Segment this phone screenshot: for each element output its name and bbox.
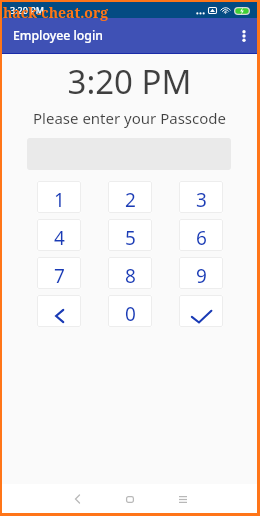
button[interactable]: 9	[179, 257, 223, 289]
staticText: 4	[54, 225, 65, 251]
button[interactable]: 5	[108, 219, 152, 251]
staticText: 1	[54, 187, 65, 213]
button[interactable]: Confirm	[179, 295, 223, 327]
staticText: 7	[54, 263, 65, 289]
button[interactable]: 6	[179, 219, 223, 251]
button[interactable]: 1	[37, 181, 81, 213]
button[interactable]: 7	[37, 257, 81, 289]
button[interactable]: 3	[179, 181, 223, 213]
button[interactable]: 2	[108, 181, 152, 213]
staticText: Employee login	[13, 27, 104, 44]
staticText: 2	[125, 187, 136, 213]
button[interactable]: 0	[108, 295, 152, 327]
staticText: hack-cheat.org	[3, 3, 109, 22]
button[interactable]: Backspace	[37, 295, 81, 327]
staticText: 6	[196, 225, 207, 251]
staticText: 3	[196, 187, 207, 213]
button[interactable]: More options	[232, 24, 256, 48]
staticText: 3:20 PM	[10, 4, 44, 16]
button[interactable]: 8	[108, 257, 152, 289]
staticText: Please enter your Passcode	[2, 108, 257, 128]
button[interactable]: Recent apps	[170, 486, 196, 512]
button[interactable]: 4	[37, 219, 81, 251]
staticText: 0	[125, 301, 136, 327]
staticText: 5	[125, 225, 136, 251]
staticText: 9	[196, 263, 207, 289]
staticText: 3:20 PM	[2, 59, 257, 104]
button[interactable]: Back	[64, 486, 90, 512]
staticText: 8	[125, 263, 136, 289]
button[interactable]: Home	[117, 486, 143, 512]
